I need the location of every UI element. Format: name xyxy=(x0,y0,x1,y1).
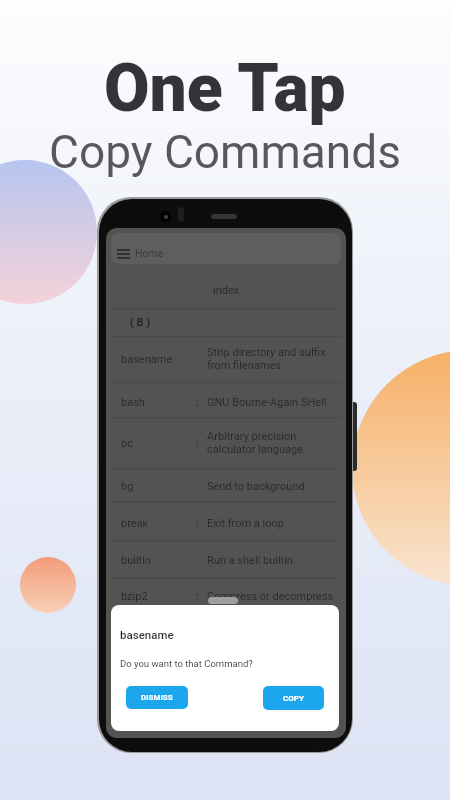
staticText: break xyxy=(121,517,149,530)
button[interactable] xyxy=(111,385,341,419)
staticText: ( B ) xyxy=(130,316,151,329)
staticText: : xyxy=(196,554,199,567)
button[interactable]: DISMISS xyxy=(126,686,188,709)
staticText: Copy Commands xyxy=(49,125,401,179)
staticText: Home xyxy=(135,247,164,259)
staticText: index xyxy=(213,284,240,297)
staticText: : xyxy=(196,396,199,409)
button[interactable] xyxy=(111,417,341,469)
staticText: bg xyxy=(121,480,134,493)
button[interactable] xyxy=(111,333,341,385)
button[interactable]: COPY xyxy=(263,686,324,710)
staticText: : xyxy=(196,437,199,450)
staticText: builtin xyxy=(121,554,151,567)
staticText: : xyxy=(196,353,199,366)
button[interactable] xyxy=(111,469,341,503)
staticText: Arbitrary precision calculator language xyxy=(207,430,304,456)
button[interactable]: Home xyxy=(111,233,341,264)
button[interactable] xyxy=(111,506,341,540)
button[interactable] xyxy=(111,579,341,613)
staticText: : xyxy=(196,517,199,530)
staticText: basename xyxy=(121,353,173,366)
staticText: : xyxy=(196,590,199,603)
staticText: : xyxy=(196,480,199,493)
staticText: One Tap xyxy=(104,50,346,126)
staticText: bc xyxy=(121,437,133,450)
staticText: COPY xyxy=(283,694,304,703)
staticText: bzip2 xyxy=(121,590,148,603)
staticText: basename xyxy=(120,628,174,641)
staticText: Strip directory and suffix from filename… xyxy=(207,346,326,372)
staticText: Do you want to that Command? xyxy=(120,658,253,669)
button[interactable] xyxy=(111,543,341,577)
staticText: Run a shell builtin xyxy=(207,554,293,567)
staticText: Send to background xyxy=(207,480,305,493)
staticText: DISMISS xyxy=(141,693,173,702)
staticText: bash xyxy=(121,396,145,409)
staticText: Compress or decompress xyxy=(207,590,334,603)
staticText: Exit from a loop xyxy=(207,517,284,530)
staticText: GNU Bourne-Again SHell xyxy=(207,396,327,409)
